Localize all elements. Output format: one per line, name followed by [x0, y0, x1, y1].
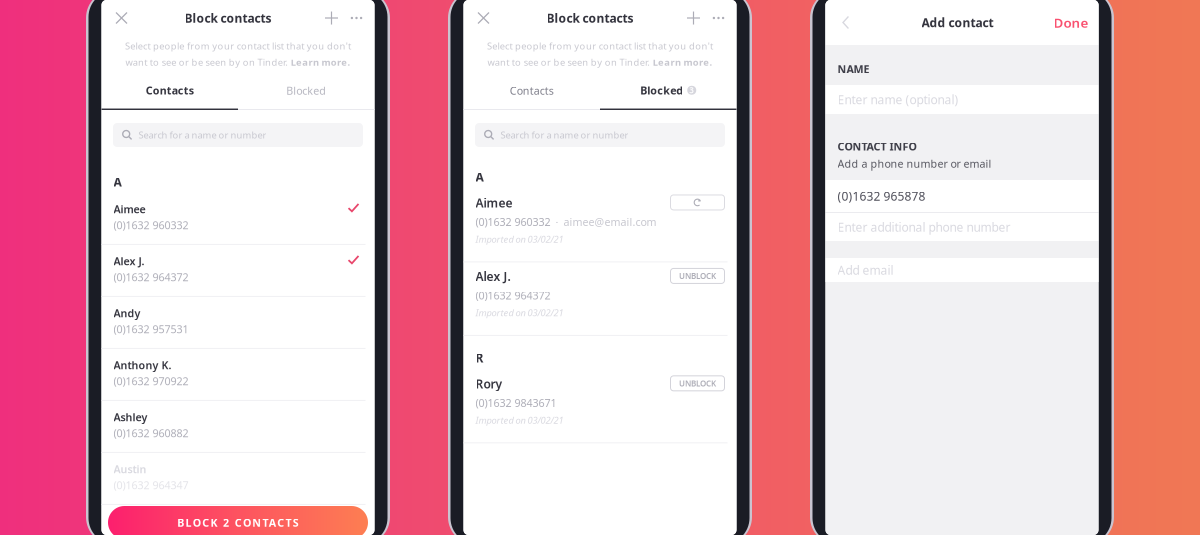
staticText: UNBLOCK: [679, 271, 716, 281]
staticText: Blocked: [286, 83, 326, 98]
staticText: Enter name (optional): [837, 91, 958, 107]
button[interactable]: Add contact: [318, 4, 344, 32]
button[interactable]: Alex J.: [463, 262, 736, 336]
staticText: Ashley: [113, 410, 147, 424]
staticText: ·: [555, 215, 558, 229]
staticText: Aimee: [113, 202, 145, 216]
button[interactable]: (0)1632 965878: [825, 180, 1098, 212]
staticText: Aimee: [475, 195, 512, 211]
button[interactable]: Andy: [101, 297, 374, 349]
staticText: CONTACT INFO: [837, 139, 916, 153]
staticText: Austin: [113, 462, 146, 476]
button[interactable]: Add email: [825, 258, 1098, 282]
button[interactable]: Aimee: [463, 189, 736, 262]
staticText: Contacts: [510, 83, 554, 98]
staticText: Done: [1053, 14, 1088, 31]
staticText: Add contact: [921, 14, 993, 30]
staticText: (0)1632 960332: [113, 218, 188, 232]
staticText: aimee@email.com: [563, 215, 656, 229]
staticText: Imported on 03/02/21: [475, 306, 563, 319]
staticText: Select people from your contact list tha…: [125, 40, 351, 52]
staticText: want to see or be seen by on Tinder. Lea…: [125, 56, 351, 68]
button[interactable]: Unblocking: [670, 195, 724, 210]
staticText: (0)1632 965878: [837, 188, 925, 204]
staticText: Alex J.: [113, 254, 144, 268]
staticText: Select people from your contact list tha…: [487, 40, 713, 52]
staticText: Imported on 03/02/21: [475, 414, 563, 426]
staticText: want to see or be seen by on Tinder. Lea…: [487, 56, 713, 68]
staticText: Block contacts: [546, 10, 633, 26]
staticText: 3: [689, 85, 694, 95]
button[interactable]: More options: [706, 4, 730, 32]
staticText: Rory: [475, 376, 502, 392]
button[interactable]: Add contact: [680, 4, 706, 32]
staticText: (0)1632 964372: [113, 270, 188, 284]
button[interactable]: Close: [105, 4, 137, 32]
button[interactable]: Ashley: [101, 401, 374, 453]
button[interactable]: Blocked: [238, 72, 374, 110]
staticText: (0)1632 964372: [475, 288, 550, 303]
staticText: (0)1632 960882: [113, 426, 188, 440]
staticText: NAME: [837, 62, 869, 76]
button[interactable]: UNBLOCK: [670, 268, 724, 283]
staticText: (0)1632 964347: [113, 478, 188, 492]
button[interactable]: Contacts: [101, 72, 238, 110]
button[interactable]: Blocked: [600, 72, 736, 110]
button[interactable]: Enter additional phone number: [825, 213, 1098, 241]
staticText: Add email: [837, 262, 893, 278]
staticText: A: [475, 169, 483, 185]
button[interactable]: Search for a name or number: [475, 123, 725, 147]
button[interactable]: Enter name (optional): [825, 85, 1098, 114]
staticText: (0)1632 960332: [475, 215, 550, 229]
button[interactable]: Anthony K.: [101, 349, 374, 401]
button[interactable]: Austin: [101, 453, 374, 505]
button[interactable]: UNBLOCK: [670, 376, 724, 391]
staticText: Imported on 03/02/21: [475, 233, 563, 245]
button[interactable]: BLOCK 2 CONTACTS: [108, 506, 368, 535]
button[interactable]: More options: [344, 4, 368, 32]
button[interactable]: Search for a name or number: [113, 123, 363, 147]
button[interactable]: Rory: [463, 370, 736, 443]
button[interactable]: Back: [829, 7, 861, 37]
staticText: Alex J.: [475, 268, 510, 284]
staticText: Anthony K.: [113, 358, 171, 372]
staticText: Search for a name or number: [138, 129, 266, 141]
staticText: BLOCK 2 CONTACTS: [177, 515, 299, 530]
button[interactable]: Contacts: [463, 72, 600, 110]
staticText: R: [475, 350, 483, 366]
staticText: A: [113, 174, 121, 190]
staticText: Add a phone number or email: [837, 156, 991, 171]
staticText: (0)1632 9843671: [475, 396, 556, 410]
button[interactable]: Alex J.: [101, 245, 374, 297]
staticText: Enter additional phone number: [837, 219, 1010, 235]
staticText: Andy: [113, 306, 140, 320]
staticText: Block contacts: [184, 10, 271, 26]
staticText: Search for a name or number: [500, 129, 628, 141]
button[interactable]: Done: [1053, 7, 1098, 37]
button[interactable]: Close: [467, 4, 499, 32]
staticText: UNBLOCK: [679, 378, 716, 389]
staticText: (0)1632 970922: [113, 374, 188, 388]
button[interactable]: Aimee: [101, 193, 374, 245]
staticText: (0)1632 957531: [113, 322, 188, 336]
staticText: Contacts: [146, 83, 194, 97]
staticText: Blocked: [640, 83, 683, 97]
